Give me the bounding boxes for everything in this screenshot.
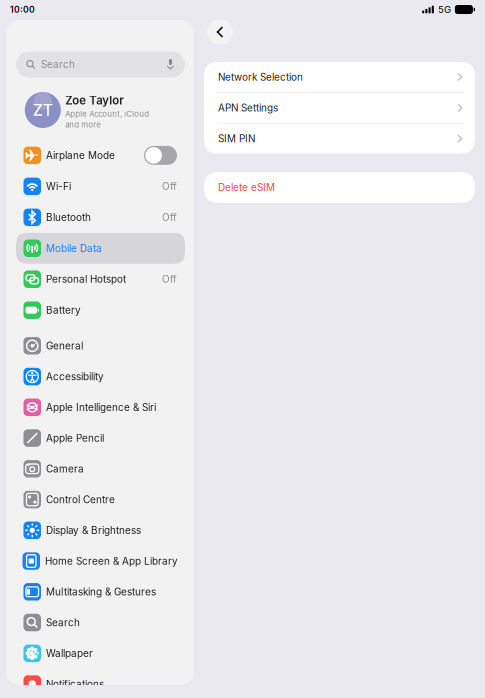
button[interactable]: Mobile Data [16, 233, 185, 264]
button[interactable]: Wi-Fi [16, 171, 185, 202]
button[interactable]: General [16, 330, 185, 361]
staticText: Apple Account, iCloud [65, 109, 149, 119]
button[interactable]: Delete eSIM [204, 172, 475, 202]
staticText: and more [65, 120, 101, 129]
staticText: Bluetooth [46, 211, 91, 223]
staticText: Airplane Mode [46, 149, 115, 161]
button[interactable]: Search [16, 51, 185, 77]
button[interactable]: Airplane Mode [16, 140, 185, 171]
button[interactable]: Personal Hotspot [16, 264, 185, 295]
staticText: Display & Brightness [46, 524, 141, 536]
button[interactable]: Apple Intelligence & Siri [16, 392, 185, 423]
button[interactable]: Home Screen & App Library [16, 545, 185, 576]
button[interactable]: Control Centre [16, 484, 185, 515]
staticText: Delete eSIM [218, 181, 275, 193]
staticText: Notifications [46, 678, 104, 690]
button[interactable]: Network Selection [204, 62, 475, 92]
button[interactable]: Notifications [16, 668, 185, 698]
button[interactable]: Bluetooth [16, 202, 185, 233]
button[interactable]: Search [16, 607, 185, 638]
staticText: General [46, 340, 83, 352]
staticText: Battery [46, 304, 81, 316]
button[interactable]: ZT [16, 88, 185, 132]
staticText: Multitasking & Gestures [46, 586, 156, 598]
staticText: Apple Intelligence & Siri [46, 401, 156, 413]
staticText: Home Screen & App Library [45, 555, 178, 567]
button[interactable]: APN Settings [204, 93, 475, 123]
staticText: 10:00 [10, 4, 35, 15]
staticText: Control Centre [46, 493, 115, 505]
staticText: Network Selection [218, 71, 303, 83]
staticText: Search [41, 58, 75, 70]
staticText: Apple Pencil [46, 432, 104, 444]
button[interactable]: SIM PIN [204, 124, 475, 154]
button[interactable]: Wallpaper [16, 638, 185, 669]
staticText: SIM PIN [218, 133, 255, 145]
staticText: Mobile Data [46, 242, 102, 254]
staticText: Zoe Taylor [65, 93, 123, 107]
button[interactable]: Battery [16, 295, 185, 326]
staticText: APN Settings [218, 102, 278, 114]
staticText: Wi-Fi [46, 180, 71, 192]
staticText: Off [162, 273, 177, 285]
button[interactable]: Display & Brightness [16, 515, 185, 546]
staticText: Camera [46, 463, 84, 475]
staticText: Wallpaper [46, 647, 93, 659]
button[interactable]: Back [207, 19, 233, 45]
staticText: Personal Hotspot [46, 273, 126, 285]
button[interactable]: Multitasking & Gestures [16, 576, 185, 607]
staticText: ZT [33, 100, 53, 120]
staticText: Accessibility [46, 370, 104, 382]
staticText: Search [46, 616, 80, 628]
staticText: Off [162, 211, 177, 223]
button[interactable]: Apple Pencil [16, 423, 185, 454]
staticText: Off [162, 180, 177, 192]
button[interactable]: Camera [16, 453, 185, 484]
button[interactable]: Accessibility [16, 361, 185, 392]
staticText: 5G [438, 4, 451, 15]
